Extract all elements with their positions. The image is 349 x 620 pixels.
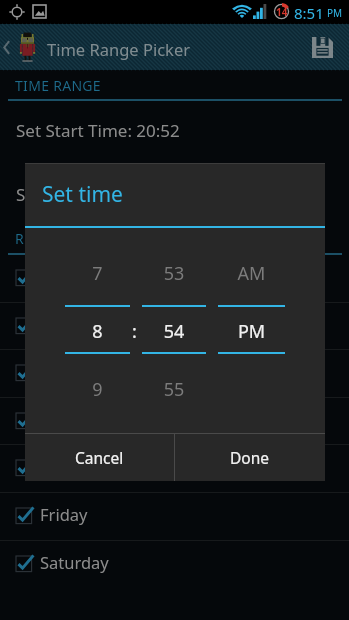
staticText: Cancel: [75, 447, 124, 468]
button[interactable]: Done: [175, 434, 325, 481]
staticText: 14: [276, 5, 288, 19]
button[interactable]: Thursday: [0, 444, 349, 491]
staticText: Time Range Picker: [47, 38, 191, 60]
button[interactable]: 7: [65, 261, 130, 286]
staticText: 8: [65, 319, 130, 344]
staticText: REPEAT: [15, 229, 66, 248]
button[interactable]: Set End Time: 07:00: [0, 171, 349, 219]
staticText: Sunday: [40, 265, 98, 287]
staticText: Set End Time: 07:00: [16, 183, 173, 206]
button[interactable]: Navigate up: [0, 24, 17, 70]
staticText: Saturday: [40, 551, 109, 573]
button[interactable]: Wednesday: [0, 397, 349, 444]
button[interactable]: 9: [65, 377, 130, 402]
staticText: Monday: [40, 313, 103, 335]
button[interactable]: Saturday: [0, 540, 349, 587]
button[interactable]: Save: [299, 24, 345, 70]
staticText: 8:51: [294, 3, 324, 23]
staticText: Set Start Time: 20:52: [16, 119, 180, 142]
button[interactable]: 53: [142, 261, 206, 286]
staticText: Thursday: [40, 455, 113, 477]
button[interactable]: Tuesday: [0, 349, 349, 396]
staticText: Set time: [42, 180, 123, 209]
button[interactable]: 55: [142, 377, 206, 402]
staticText: Friday: [40, 503, 88, 525]
staticText: 54: [142, 319, 206, 344]
staticText: PM: [327, 6, 343, 20]
staticText: TIME RANGE: [15, 76, 101, 95]
button[interactable]: AM: [218, 261, 285, 286]
button[interactable]: Set Start Time: 20:52: [0, 107, 349, 155]
button[interactable]: Friday: [0, 492, 349, 539]
button[interactable]: Sunday: [0, 254, 349, 301]
staticText: :: [132, 319, 137, 344]
staticText: PM: [218, 319, 285, 344]
button[interactable]: Cancel: [25, 434, 174, 481]
staticText: Done: [230, 447, 270, 468]
button[interactable]: Monday: [0, 302, 349, 349]
